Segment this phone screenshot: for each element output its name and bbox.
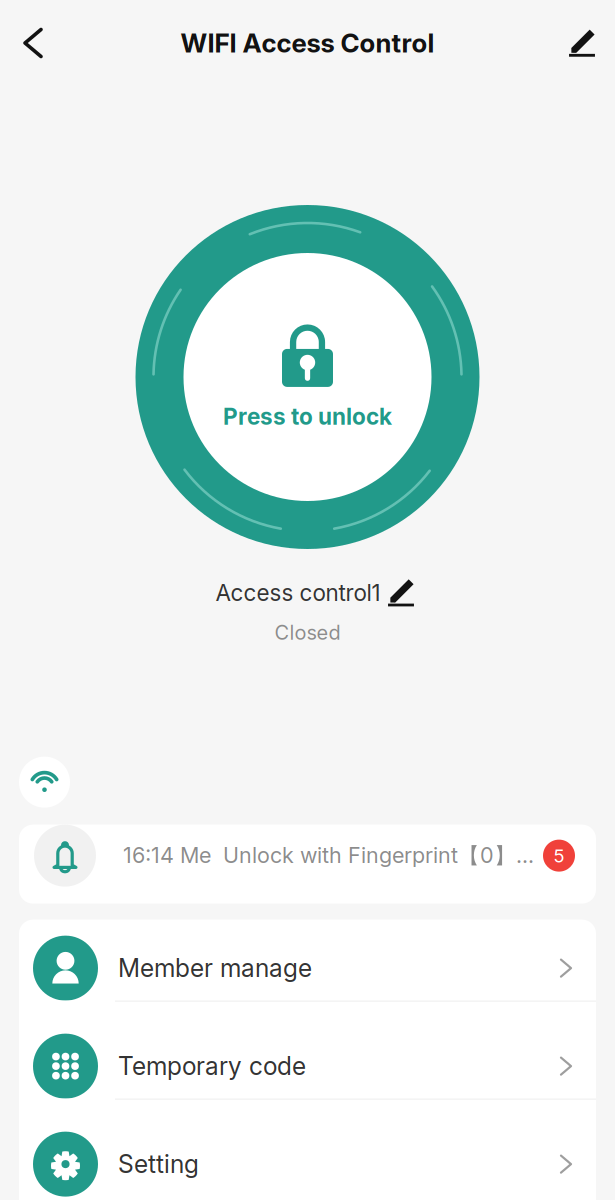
- button[interactable]: Edit: [549, 0, 615, 86]
- button[interactable]: Rename: [387, 579, 414, 606]
- staticText: Access control1: [215, 579, 380, 606]
- button[interactable]: Press to unlock: [135, 205, 479, 549]
- staticText: WIFI Access Control: [180, 27, 434, 59]
- staticText: Temporary code: [118, 1051, 306, 1081]
- button[interactable]: 16:14 Me Unlock with Fingerprint【0】...: [0, 825, 615, 904]
- staticText: Closed: [274, 620, 340, 645]
- staticText: Setting: [118, 1149, 199, 1179]
- button[interactable]: Member manage: [19, 920, 596, 1018]
- button[interactable]: Setting: [19, 1116, 596, 1200]
- staticText: Member manage: [118, 953, 312, 983]
- staticText: Press to unlock: [223, 403, 392, 430]
- staticText: 16:14 Me Unlock with Fingerprint【0】...: [123, 842, 534, 869]
- staticText: 5: [553, 844, 564, 867]
- button[interactable]: Temporary code: [19, 1018, 596, 1116]
- button[interactable]: Back: [0, 0, 66, 86]
